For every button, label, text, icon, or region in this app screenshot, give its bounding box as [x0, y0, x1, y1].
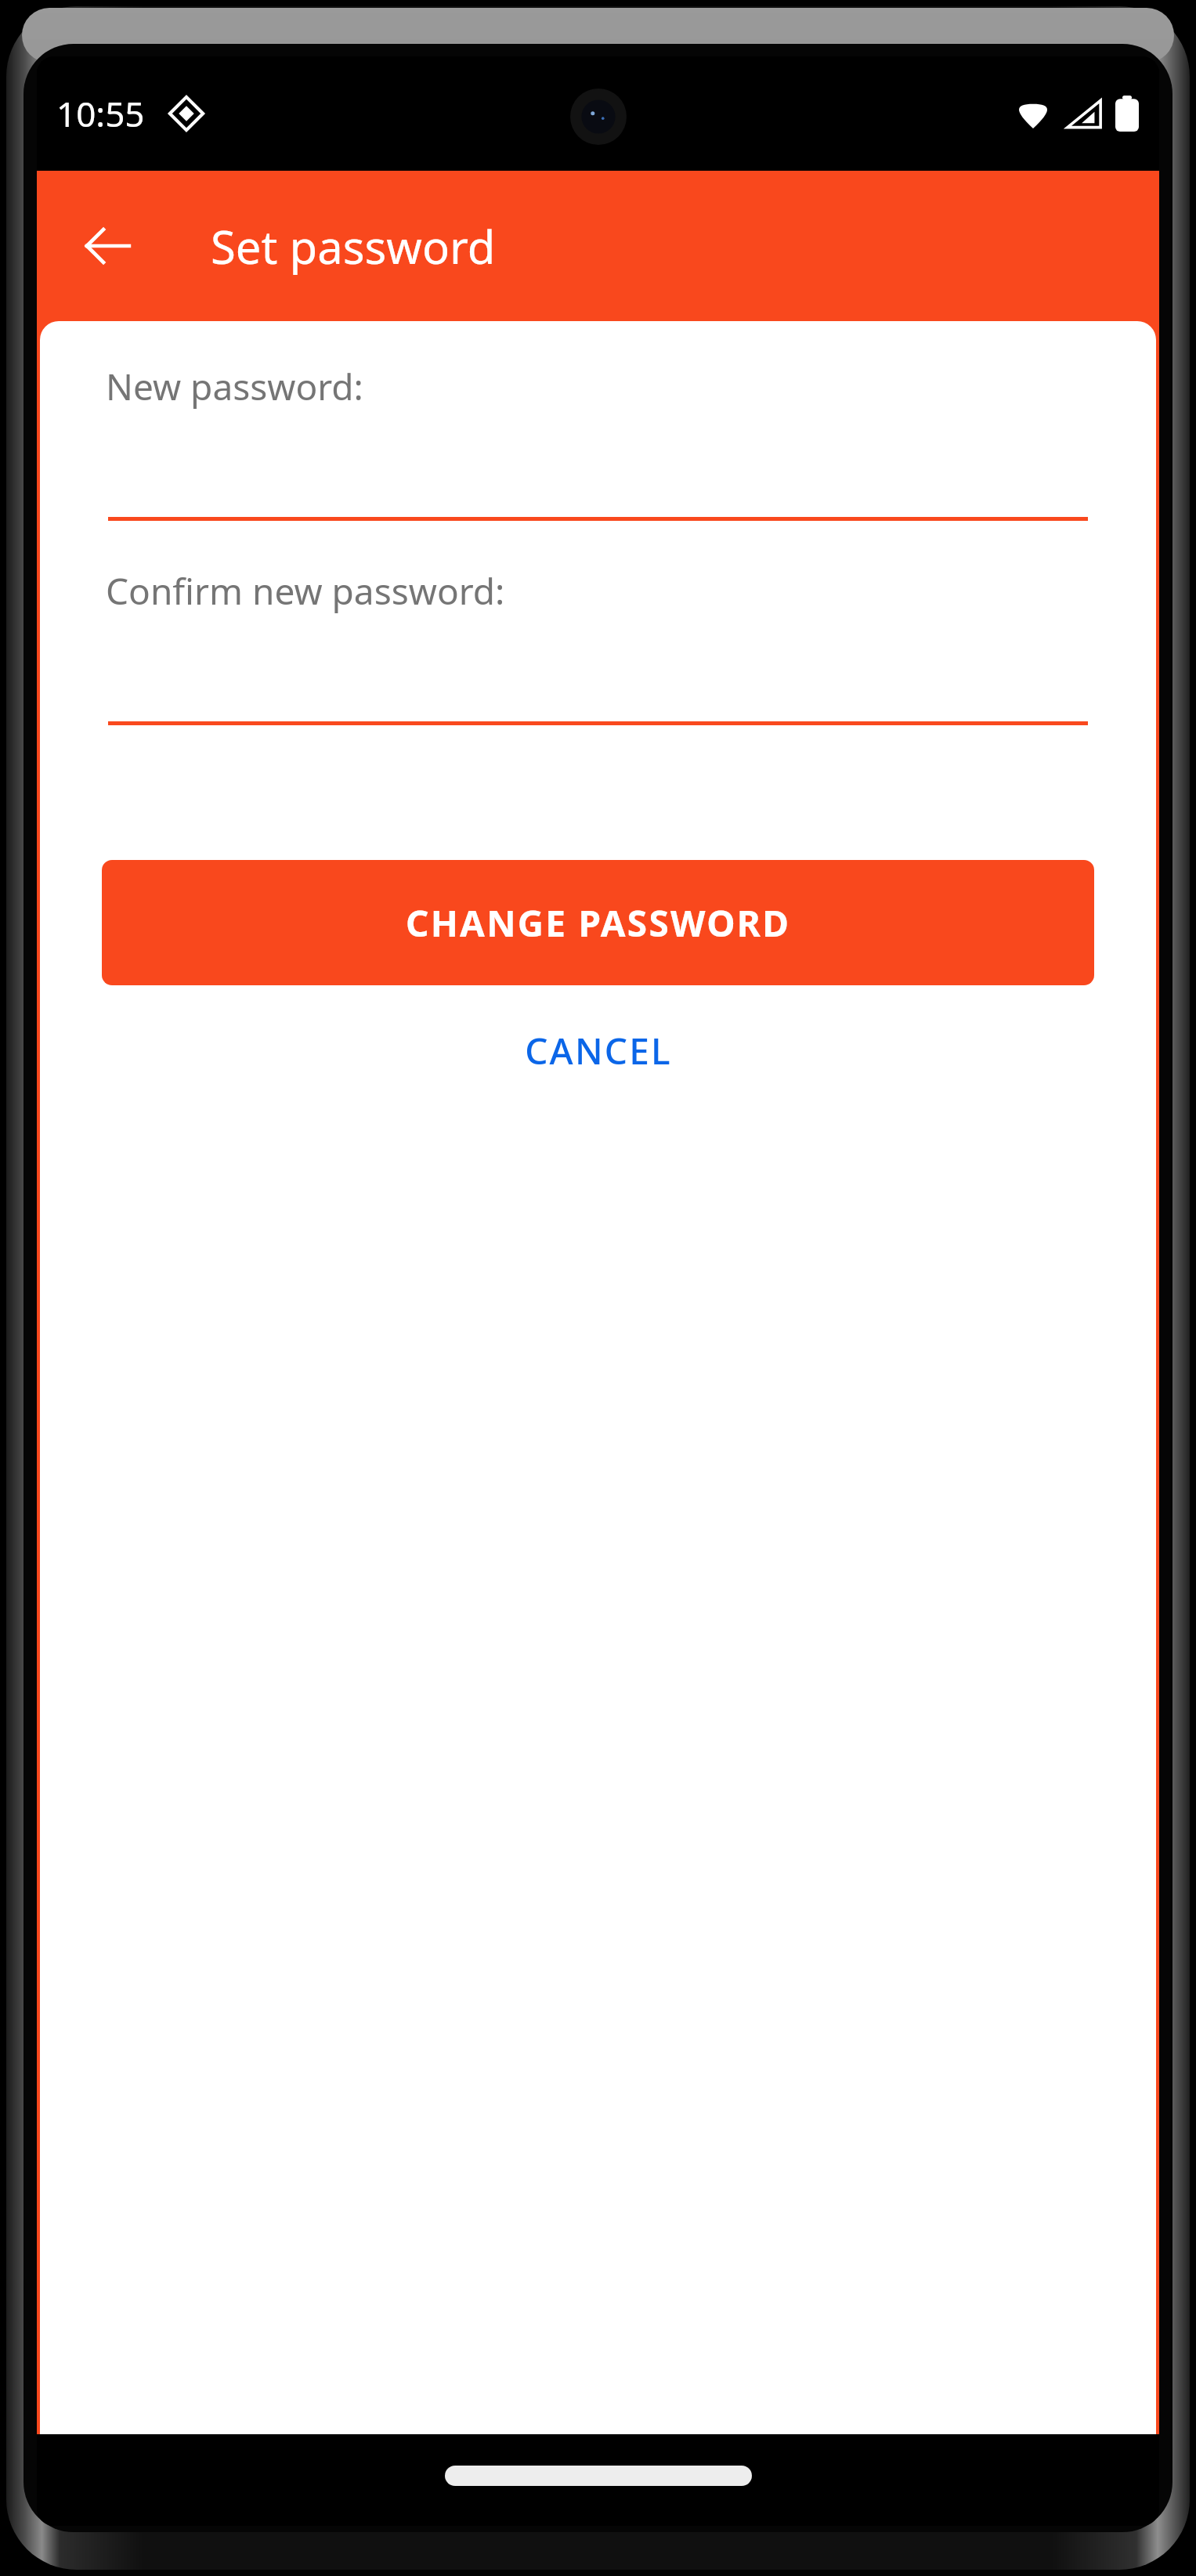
staticText: New password:: [106, 362, 363, 411]
button[interactable]: [108, 464, 1088, 521]
button[interactable]: CANCEL: [102, 1003, 1094, 1098]
button[interactable]: [108, 669, 1088, 725]
staticText: Set password: [211, 215, 496, 277]
button[interactable]: Back: [70, 208, 145, 284]
staticText: Confirm new password:: [106, 566, 505, 616]
staticText: CANCEL: [525, 1026, 672, 1075]
staticText: CHANGE PASSWORD: [406, 898, 791, 948]
button[interactable]: CHANGE PASSWORD: [102, 860, 1094, 985]
staticText: 10:55: [56, 90, 145, 137]
